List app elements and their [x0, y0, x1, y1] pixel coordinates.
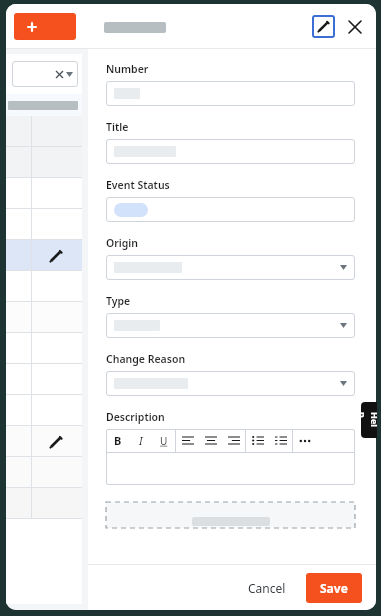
button[interactable]: Edit [46, 246, 66, 266]
staticText: Save [320, 580, 348, 596]
button[interactable] [106, 81, 355, 106]
staticText: Change Reason [106, 352, 186, 366]
button[interactable] [106, 197, 355, 222]
button[interactable]: Format [176, 429, 199, 452]
staticText: Number [106, 62, 149, 76]
button[interactable]: Format [106, 429, 129, 452]
staticText: Cancel [248, 580, 286, 596]
button[interactable]: Format [152, 429, 175, 452]
staticText: Description [106, 410, 165, 424]
staticText: Help [361, 412, 377, 428]
staticText: I [139, 433, 143, 448]
staticText: Type [106, 294, 131, 308]
button[interactable] [6, 364, 82, 395]
staticText: Origin [106, 236, 139, 250]
button[interactable]: Format [129, 429, 152, 452]
button[interactable]: Format [199, 429, 222, 452]
button[interactable] [6, 178, 82, 209]
button[interactable] [106, 371, 355, 396]
button[interactable]: Add [14, 13, 76, 40]
button[interactable]: Attach file [106, 502, 355, 528]
staticText: Event Status [106, 178, 170, 192]
button[interactable] [106, 313, 355, 338]
button[interactable]: Edit [6, 426, 82, 457]
staticText: Title [106, 120, 129, 134]
button[interactable] [6, 116, 82, 147]
staticText: U [160, 434, 168, 448]
button[interactable] [106, 139, 355, 164]
button[interactable]: Cancel [240, 574, 294, 602]
button[interactable] [6, 209, 82, 240]
button[interactable]: Edit [46, 432, 66, 452]
button[interactable]: Close [345, 17, 365, 37]
button[interactable]: Format [269, 429, 292, 452]
button[interactable] [6, 147, 82, 178]
button[interactable]: Edit [312, 15, 335, 38]
button[interactable] [6, 302, 82, 333]
button[interactable] [6, 271, 82, 302]
button[interactable] [6, 457, 82, 488]
button[interactable] [6, 488, 82, 519]
staticText: B [114, 433, 122, 448]
button[interactable] [6, 333, 82, 364]
button[interactable] [6, 395, 82, 426]
button[interactable]: Save [306, 573, 362, 603]
button[interactable]: Format [222, 429, 245, 452]
button[interactable]: Filter [12, 61, 78, 87]
button[interactable] [106, 255, 355, 280]
button[interactable]: Format [246, 429, 269, 452]
button[interactable]: Edit [6, 240, 82, 271]
button[interactable]: Format [293, 429, 316, 452]
button[interactable]: Help [361, 402, 377, 438]
